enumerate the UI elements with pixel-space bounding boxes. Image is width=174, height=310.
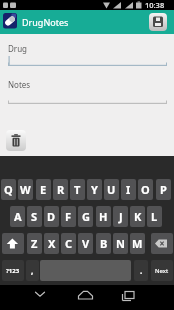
staticText: N xyxy=(116,236,125,251)
staticText: . xyxy=(140,265,143,276)
staticText: D xyxy=(47,209,56,224)
button[interactable] xyxy=(149,13,167,31)
button[interactable] xyxy=(2,233,24,254)
staticText: B xyxy=(100,236,108,251)
button[interactable]: Next xyxy=(151,260,173,281)
button[interactable] xyxy=(6,130,26,151)
button[interactable]: F xyxy=(61,206,76,227)
button[interactable]: I xyxy=(121,179,136,200)
staticText: F xyxy=(65,209,72,224)
button[interactable]: C xyxy=(61,233,76,254)
button[interactable]: O xyxy=(138,179,153,200)
button[interactable]: P xyxy=(156,179,171,200)
button[interactable]: Q xyxy=(1,179,16,200)
button[interactable]: , xyxy=(26,260,39,281)
staticText: M xyxy=(132,236,143,251)
staticText: R xyxy=(57,182,65,197)
staticText: E xyxy=(40,182,47,197)
button[interactable]: D xyxy=(44,206,59,227)
staticText: X xyxy=(48,236,56,251)
button[interactable] xyxy=(151,233,173,254)
staticText: J xyxy=(119,209,123,224)
button[interactable]: V xyxy=(78,233,93,254)
button[interactable]: R xyxy=(53,179,68,200)
staticText: Y xyxy=(91,182,98,197)
staticText: S xyxy=(31,209,38,224)
button[interactable] xyxy=(8,90,167,104)
button[interactable]: M xyxy=(130,233,145,254)
button[interactable]: W xyxy=(18,179,33,200)
staticText: ?123 xyxy=(6,267,20,275)
staticText: K xyxy=(134,209,142,224)
button[interactable] xyxy=(8,52,167,66)
staticText: Notes xyxy=(8,79,31,90)
staticText: H xyxy=(99,209,108,224)
button[interactable]: N xyxy=(113,233,128,254)
staticText: C xyxy=(65,236,73,251)
button[interactable]: J xyxy=(113,206,128,227)
button[interactable]: X xyxy=(44,233,59,254)
button[interactable]: H xyxy=(96,206,111,227)
staticText: Z xyxy=(31,236,38,251)
staticText: Next xyxy=(155,267,169,275)
staticText: L xyxy=(151,209,158,224)
button[interactable]: S xyxy=(27,206,42,227)
staticText: I xyxy=(126,182,131,197)
button[interactable]: A xyxy=(10,206,25,227)
staticText: P xyxy=(160,182,167,197)
staticText: W xyxy=(20,182,31,197)
staticText: O xyxy=(141,182,150,197)
button[interactable]: Z xyxy=(27,233,42,254)
button[interactable]: L xyxy=(147,206,162,227)
button[interactable]: K xyxy=(130,206,145,227)
button[interactable]: U xyxy=(104,179,119,200)
staticText: , xyxy=(31,265,34,276)
button[interactable]: . xyxy=(134,260,148,281)
button[interactable] xyxy=(0,156,174,285)
staticText: T xyxy=(74,182,81,197)
staticText: Drug xyxy=(8,43,28,54)
staticText: G xyxy=(82,209,90,224)
staticText: Q xyxy=(4,182,13,197)
staticText: V xyxy=(82,236,90,251)
staticText: DrugNotes xyxy=(22,16,69,28)
button[interactable]: B xyxy=(96,233,111,254)
staticText: 10:38 xyxy=(145,0,165,10)
button[interactable]: E xyxy=(36,179,51,200)
button[interactable]: T xyxy=(70,179,85,200)
staticText: U xyxy=(107,182,116,197)
button[interactable]: ?123 xyxy=(2,260,24,281)
button[interactable]: G xyxy=(78,206,93,227)
button[interactable]: Y xyxy=(87,179,102,200)
staticText: A xyxy=(14,209,22,224)
